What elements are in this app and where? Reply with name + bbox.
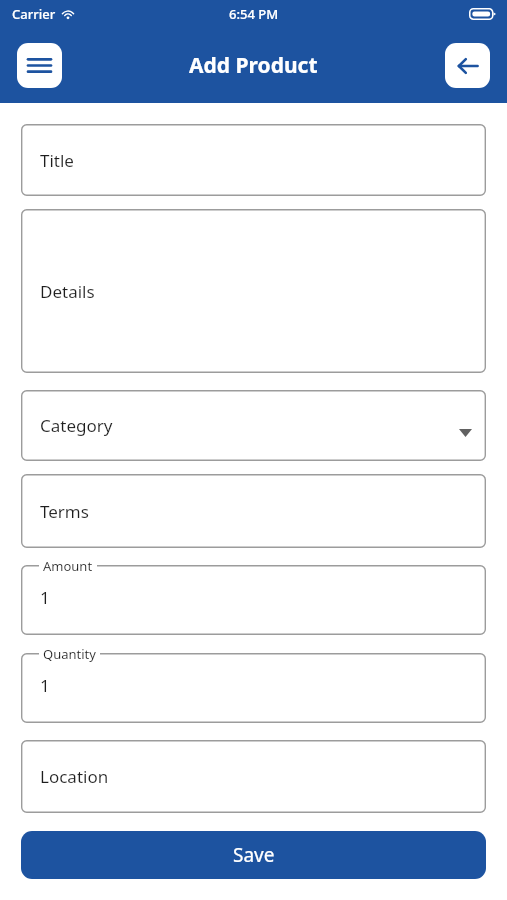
button[interactable]: Details — [21, 209, 486, 373]
button[interactable]: Terms — [21, 474, 486, 548]
button[interactable]: Save — [21, 831, 486, 879]
button[interactable]: Amount — [21, 565, 486, 635]
staticText: Title — [40, 149, 74, 172]
staticText: Location — [40, 765, 109, 788]
button[interactable]: Title — [21, 124, 486, 196]
staticText: Category — [40, 414, 113, 437]
staticText: Terms — [40, 500, 89, 523]
staticText: Amount — [43, 557, 93, 575]
staticText: Add Product — [189, 51, 318, 80]
button[interactable]: Back — [445, 43, 490, 88]
button[interactable]: Category — [21, 390, 486, 461]
button[interactable]: Location — [21, 740, 486, 813]
staticText: Save — [233, 842, 275, 868]
staticText: Carrier — [12, 5, 56, 23]
button[interactable]: Menu — [17, 43, 62, 88]
staticText: Details — [40, 280, 95, 303]
staticText: 1 — [40, 586, 50, 609]
button[interactable]: Quantity — [21, 653, 486, 723]
staticText: 1 — [40, 674, 50, 697]
staticText: 6:54 PM — [229, 5, 279, 23]
staticText: Quantity — [43, 645, 96, 663]
